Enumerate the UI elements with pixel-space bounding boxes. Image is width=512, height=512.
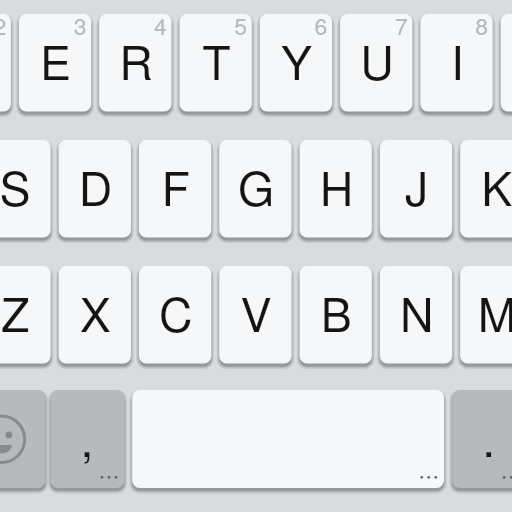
button[interactable]: E — [19, 14, 91, 112]
button[interactable]: C — [139, 266, 211, 364]
button[interactable]: N — [380, 266, 452, 364]
button[interactable]: I — [420, 14, 492, 112]
button[interactable]: D — [59, 140, 131, 238]
button[interactable]: T — [180, 14, 252, 112]
button[interactable]: J — [380, 140, 452, 238]
button[interactable]: B — [300, 266, 372, 364]
button[interactable]: M — [460, 266, 512, 364]
button[interactable]: X — [59, 266, 131, 364]
button[interactable]: Y — [260, 14, 332, 112]
button[interactable]: R — [99, 14, 171, 112]
button[interactable]: Z — [0, 266, 50, 364]
button[interactable]: , — [51, 390, 125, 488]
button[interactable]: F — [139, 140, 211, 238]
button[interactable]: V — [219, 266, 291, 364]
button[interactable]: H — [300, 140, 372, 238]
button[interactable]: Emoji keyboard — [0, 390, 45, 488]
button[interactable]: U — [340, 14, 412, 112]
button[interactable]: O — [501, 14, 512, 112]
button[interactable]: Space — [132, 390, 444, 488]
button[interactable]: K — [460, 140, 512, 238]
button[interactable]: . — [452, 390, 512, 488]
button[interactable]: S — [0, 140, 50, 238]
button[interactable]: G — [219, 140, 291, 238]
button[interactable]: W — [0, 14, 11, 112]
